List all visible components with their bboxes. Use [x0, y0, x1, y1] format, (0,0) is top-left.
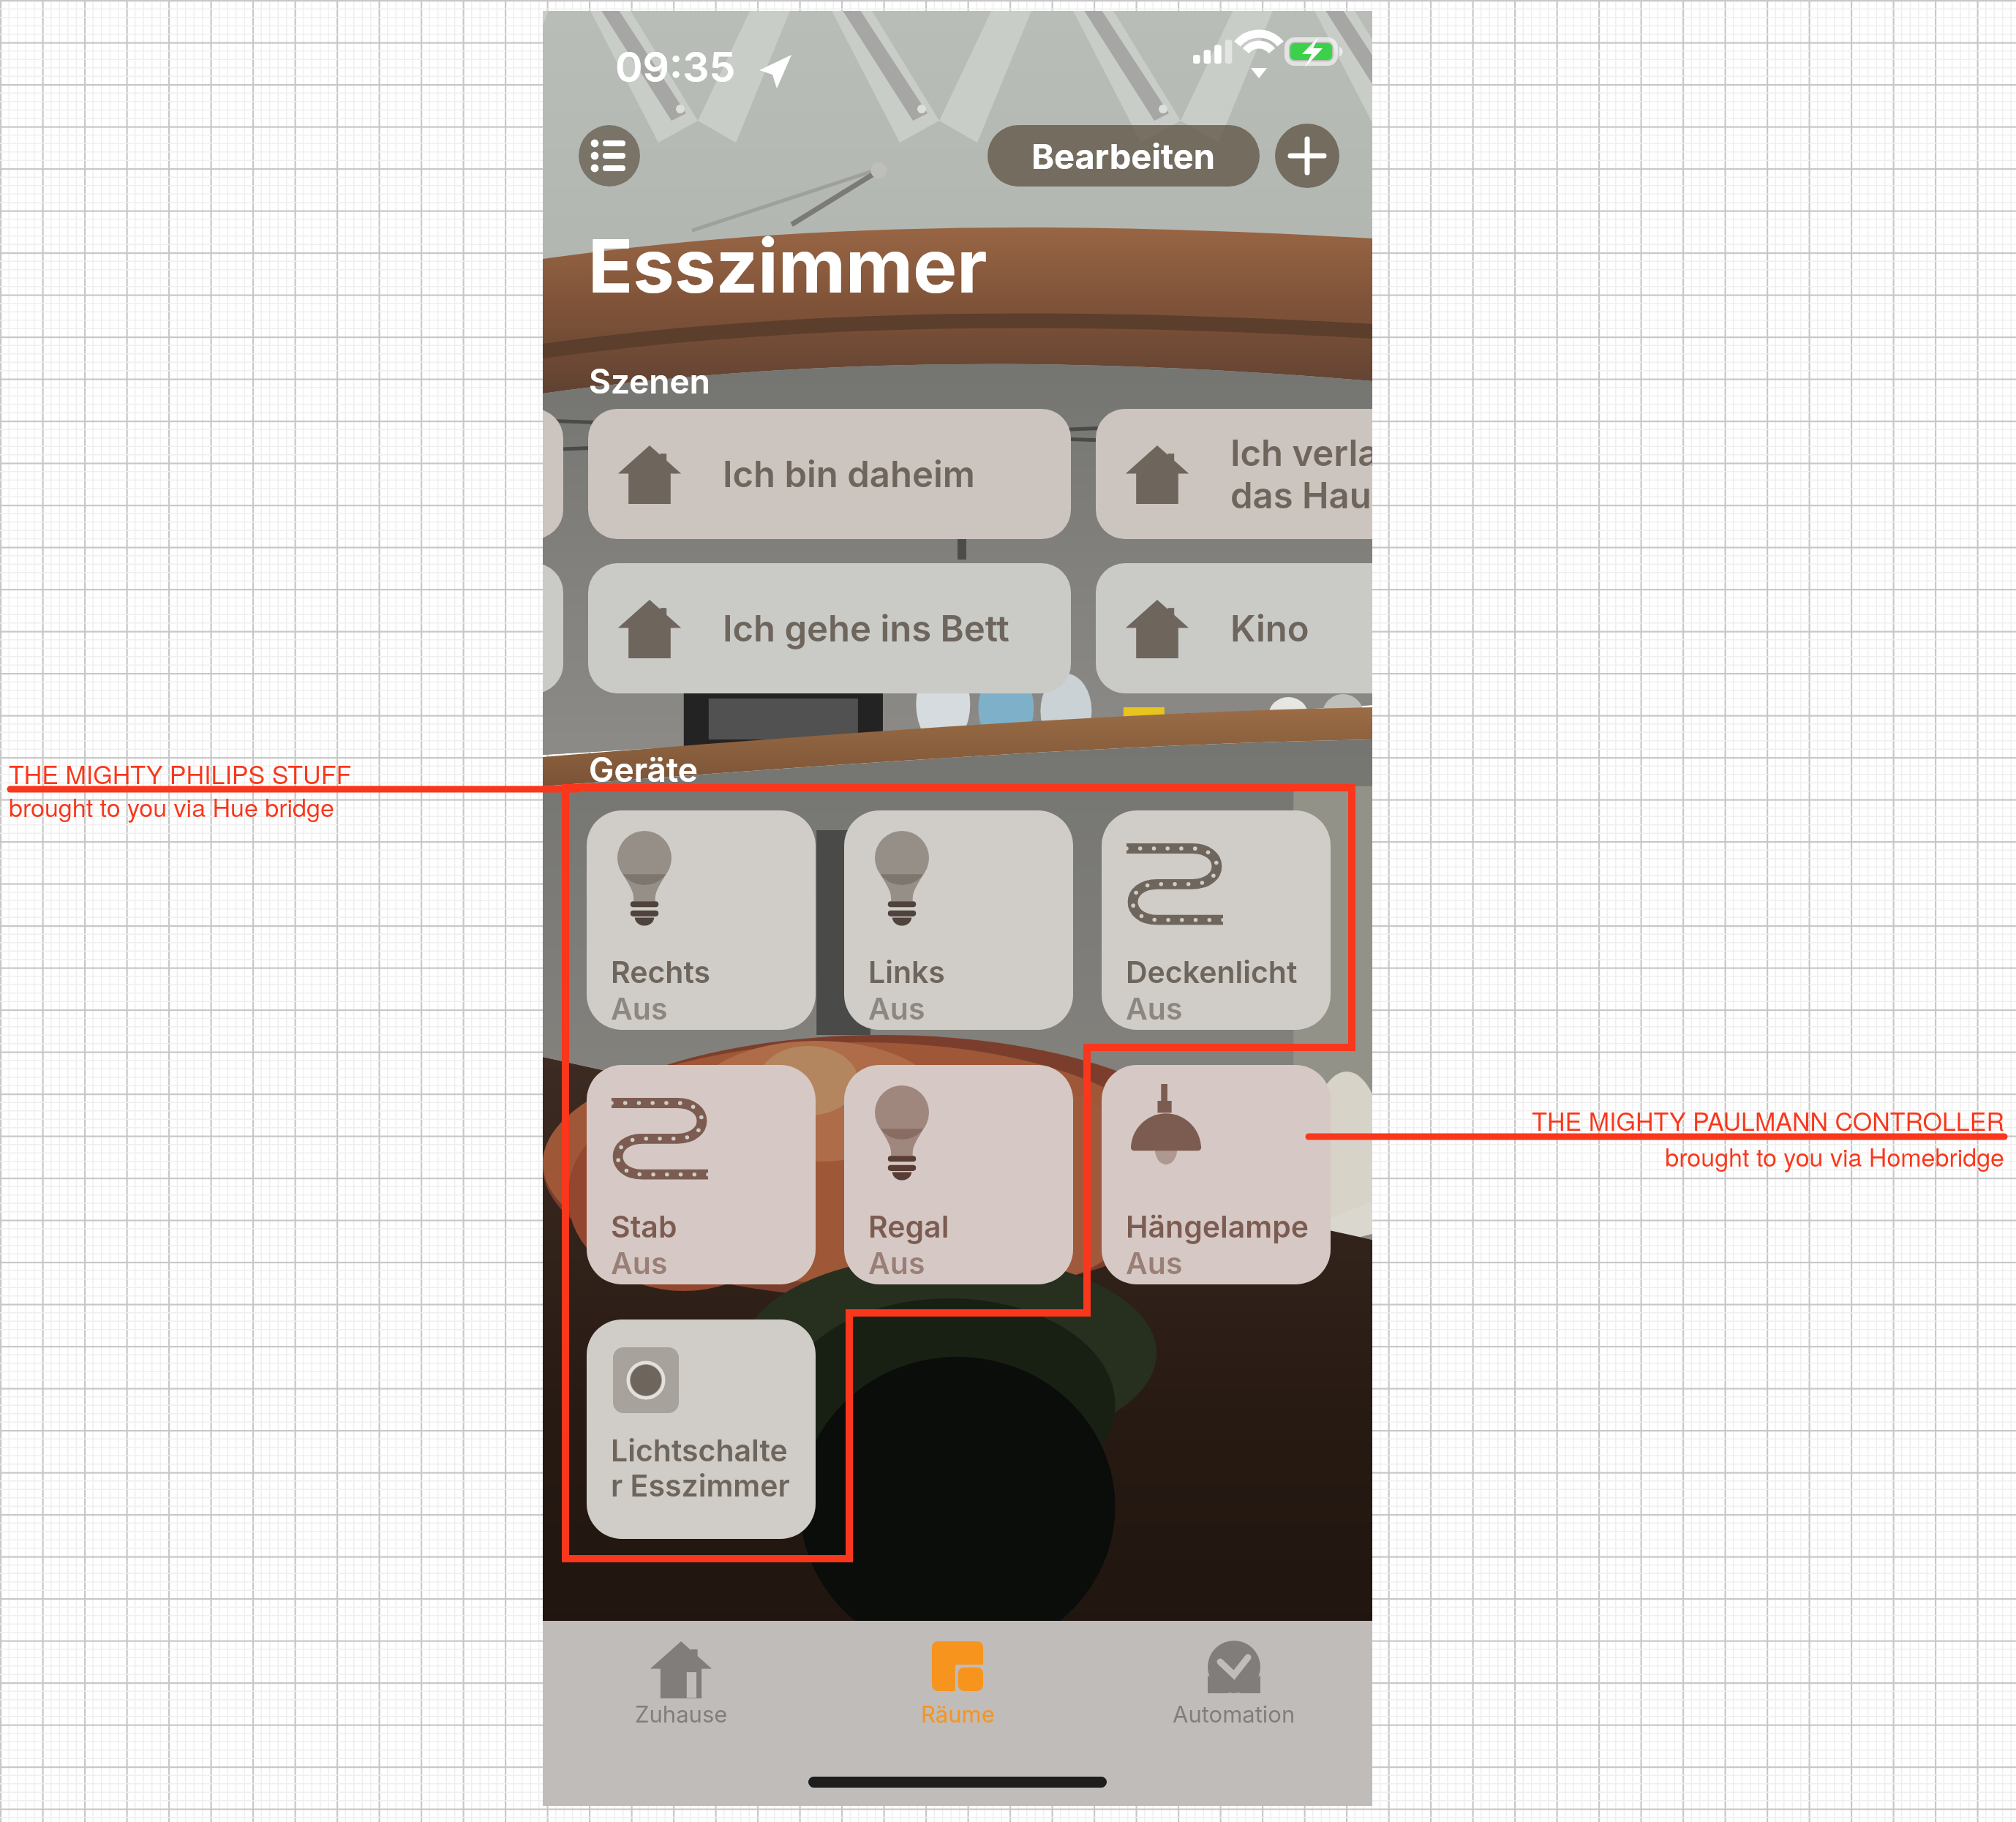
staticText: Aus [868, 990, 925, 1027]
staticText: Aus [1126, 1245, 1183, 1281]
button[interactable]: Automation [1096, 1621, 1372, 1728]
staticText: Bearbeiten [1031, 135, 1216, 177]
staticText: THE MIGHTY PAULMANN CONTROLLER [1532, 1102, 2004, 1138]
staticText: brought to you via Homebridge [1665, 1138, 2004, 1174]
staticText: Esszimmer [588, 221, 988, 310]
staticText: Kino [1230, 607, 1309, 650]
staticText: Aus [611, 1245, 668, 1281]
staticText: Räume [921, 1701, 995, 1728]
button[interactable]: Kino [1096, 563, 1372, 693]
button[interactable]: Räume [819, 1621, 1096, 1728]
staticText: THE MIGHTY PHILIPS STUFF [9, 756, 352, 791]
button[interactable]: Hängelampe [1102, 1065, 1331, 1284]
button[interactable]: Liste [579, 125, 640, 187]
staticText: Ich verla… das Haus [1230, 432, 1372, 517]
button[interactable]: Regal [844, 1065, 1073, 1284]
button[interactable]: Zuhause [543, 1621, 819, 1728]
staticText: 09:35 [615, 42, 736, 92]
button[interactable]: Stab [587, 1065, 816, 1284]
staticText: Deckenlicht [1126, 954, 1298, 990]
staticText: Automation [1173, 1701, 1295, 1728]
staticText: Lichtschalte r Esszimmer [611, 1432, 790, 1504]
button[interactable]: Ich gehe ins Bett [588, 563, 1071, 693]
button[interactable]: Rechts [587, 810, 816, 1030]
button[interactable]: Lichtschalte r Esszimmer [587, 1320, 816, 1539]
button[interactable]: Links [844, 810, 1073, 1030]
staticText: Szenen [589, 361, 710, 402]
staticText: Hängelampe [1126, 1208, 1309, 1245]
staticText: Aus [1126, 990, 1183, 1027]
staticText: Ich gehe ins Bett [723, 607, 1009, 650]
button[interactable]: Bearbeiten [988, 125, 1260, 187]
staticText: Ich bin daheim [723, 453, 975, 496]
staticText: Regal [868, 1208, 949, 1245]
button[interactable]: Deckenlicht [1102, 810, 1331, 1030]
button[interactable]: Ich bin daheim [588, 409, 1071, 539]
staticText: Rechts [611, 954, 711, 990]
staticText: Zuhause [635, 1701, 728, 1728]
staticText: Links [868, 954, 945, 990]
staticText: Stab [611, 1208, 677, 1245]
staticText: Aus [611, 990, 668, 1027]
button[interactable]: Hinzufügen [1275, 124, 1339, 188]
staticText: brought to you via Hue bridge [9, 788, 334, 824]
staticText: Aus [868, 1245, 925, 1281]
staticText: Geräte [589, 749, 698, 790]
button[interactable]: Ich verla… das Haus [1096, 409, 1372, 539]
